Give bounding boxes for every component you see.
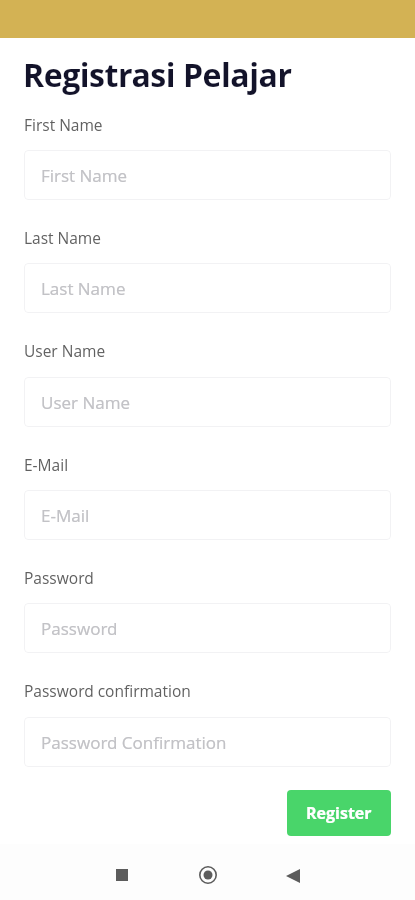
staticText: Register [306, 802, 372, 824]
button[interactable]: Password Confirmation [24, 717, 391, 767]
staticText: Password [41, 617, 118, 640]
staticText: Password confirmation [24, 680, 191, 701]
staticText: Password [24, 567, 94, 588]
staticText: User Name [41, 391, 131, 414]
staticText: First Name [24, 114, 103, 135]
staticText: E-Mail [24, 454, 69, 475]
button[interactable]: Back [267, 848, 319, 900]
button[interactable]: First Name [24, 150, 391, 200]
staticText: Last Name [41, 277, 126, 300]
staticText: First Name [41, 164, 128, 187]
button[interactable]: Home [182, 847, 234, 900]
staticText: Last Name [24, 227, 101, 248]
staticText: E-Mail [41, 504, 90, 527]
button[interactable]: Password [24, 603, 391, 653]
button[interactable]: Last Name [24, 263, 391, 313]
button[interactable]: E-Mail [24, 490, 391, 540]
staticText: User Name [24, 340, 106, 361]
staticText: Registrasi Pelajar [23, 53, 292, 97]
staticText: Password Confirmation [41, 731, 227, 754]
button[interactable]: Register [287, 790, 391, 836]
button[interactable]: Recent apps [96, 847, 148, 900]
button[interactable]: User Name [24, 377, 391, 427]
